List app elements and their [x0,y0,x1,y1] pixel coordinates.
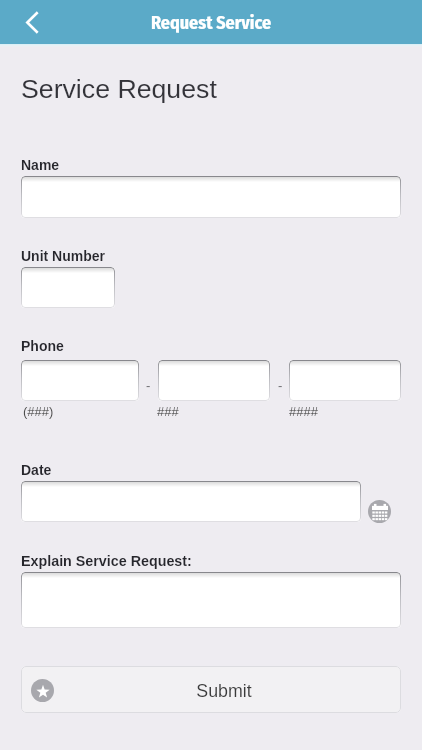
button[interactable]: Back [0,0,62,44]
button[interactable]: Submit [21,666,401,713]
staticText: Explain Service Request: [21,553,192,569]
staticText: - [146,378,151,393]
staticText: Date [21,462,52,478]
button[interactable] [21,572,401,628]
staticText: Request Service [151,12,272,34]
button[interactable] [289,360,401,401]
staticText: Service Request [21,74,217,104]
staticText: - [278,378,283,393]
button[interactable] [21,267,115,308]
staticText: Phone [21,338,64,354]
staticText: (###) [23,404,54,419]
staticText: Unit Number [21,248,105,264]
staticText: Submit [34,681,401,701]
button[interactable] [21,176,401,218]
staticText: Name [21,157,60,173]
staticText: #### [289,404,318,419]
button[interactable] [158,360,270,401]
button[interactable] [21,360,139,401]
button[interactable] [21,481,361,522]
button[interactable]: Pick date [368,500,391,523]
staticText: ### [157,404,179,419]
